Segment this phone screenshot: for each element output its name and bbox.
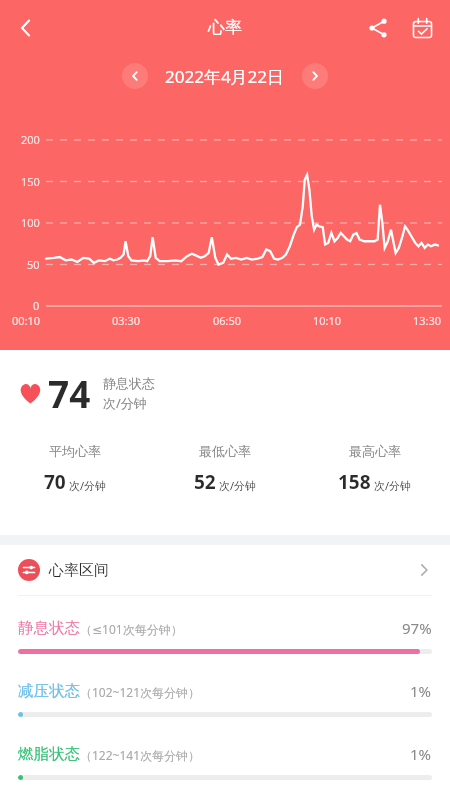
staticText: 次/分钟	[374, 478, 412, 493]
staticText: 97%	[402, 618, 432, 638]
button[interactable]: Back	[4, 6, 48, 50]
staticText: 52	[194, 469, 216, 495]
button[interactable]: 心率区间	[0, 545, 450, 595]
staticText: 燃脂状态	[18, 744, 80, 764]
staticText: 158	[338, 469, 371, 495]
button[interactable]: 平均心率	[0, 443, 150, 495]
button[interactable]: Next day	[302, 63, 328, 89]
button[interactable]: Calendar	[400, 6, 444, 50]
button[interactable]: Previous day	[122, 63, 148, 89]
staticText: 100	[21, 215, 40, 230]
button[interactable]: 最高心率	[300, 443, 450, 495]
staticText: 00:10	[12, 313, 41, 328]
staticText: 静息状态	[103, 375, 155, 391]
staticText: 06:50	[213, 313, 242, 328]
button[interactable]: 静息状态	[0, 618, 450, 654]
staticText: 最低心率	[199, 443, 251, 459]
staticText: 1%	[410, 744, 432, 764]
staticText: 03:30	[112, 313, 141, 328]
button[interactable]: 减压状态	[0, 681, 450, 717]
staticText: （102~121次每分钟）	[80, 684, 201, 700]
staticText: 心率区间	[49, 561, 109, 580]
button[interactable]: Share	[356, 6, 400, 50]
staticText: 1%	[410, 681, 432, 701]
staticText: （122~141次每分钟）	[80, 747, 201, 763]
staticText: 次/分钟	[69, 478, 107, 493]
staticText: （≤101次每分钟）	[80, 621, 183, 637]
staticText: 13:30	[413, 313, 442, 328]
staticText: 平均心率	[49, 443, 101, 459]
staticText: 心率	[208, 17, 242, 38]
button[interactable]: 最低心率	[150, 443, 300, 495]
staticText: 50	[27, 257, 40, 272]
staticText: 次/分钟	[103, 394, 147, 412]
button[interactable]: 燃脂状态	[0, 744, 450, 780]
staticText: 减压状态	[18, 681, 80, 701]
staticText: 0	[33, 298, 40, 313]
staticText: 150	[21, 174, 40, 189]
staticText: 次/分钟	[219, 478, 257, 493]
staticText: 最高心率	[349, 443, 401, 459]
staticText: 74	[48, 368, 91, 418]
staticText: 2022年4月22日	[165, 65, 285, 88]
staticText: 10:10	[313, 313, 342, 328]
staticText: 200	[21, 132, 40, 147]
staticText: 静息状态	[18, 618, 80, 638]
staticText: 70	[44, 469, 66, 495]
